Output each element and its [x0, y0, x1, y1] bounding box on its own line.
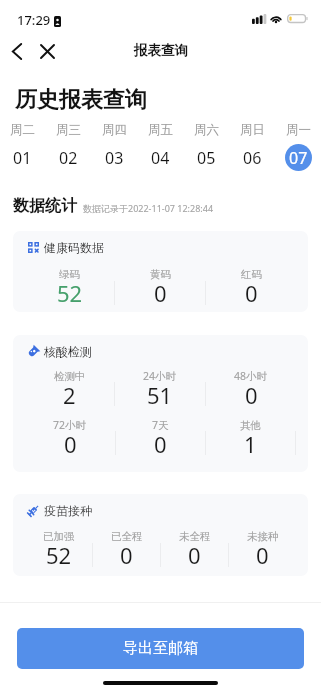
button[interactable]: 周四 — [91, 122, 137, 171]
staticText: 未全程 — [179, 530, 211, 543]
button[interactable]: 周六 — [183, 122, 229, 171]
staticText: 0 — [188, 540, 201, 570]
staticText: 黄码 — [150, 268, 171, 281]
staticText: 01 — [13, 147, 32, 169]
staticText: 06 — [243, 147, 262, 169]
staticText: 检测中 — [54, 370, 86, 383]
staticText: 0 — [64, 429, 77, 459]
button[interactable]: Close — [33, 37, 61, 65]
staticText: 72小时 — [53, 418, 87, 432]
staticText: 周三 — [56, 122, 81, 138]
staticText: 02 — [59, 147, 78, 169]
staticText: 周五 — [148, 122, 173, 138]
staticText: 03 — [105, 147, 124, 169]
staticText: 2 — [63, 380, 76, 410]
staticText: 1 — [244, 429, 257, 459]
staticText: 未接种 — [247, 530, 279, 543]
button[interactable]: Back — [3, 37, 31, 65]
staticText: 周四 — [102, 122, 127, 138]
staticText: 51 — [147, 380, 173, 410]
button[interactable]: 周三 — [45, 122, 91, 171]
staticText: 0 — [245, 278, 258, 308]
staticText: 健康码数据 — [44, 240, 104, 255]
staticText: 历史报表查询 — [15, 86, 147, 114]
staticText: 04 — [151, 147, 170, 169]
button[interactable]: 周五 — [137, 122, 183, 171]
button[interactable]: 周二 — [0, 122, 45, 171]
staticText: 52 — [46, 540, 72, 570]
staticText: 48小时 — [234, 369, 268, 383]
staticText: 疫苗接种 — [44, 503, 92, 518]
staticText: 已全程 — [111, 530, 143, 543]
staticText: 0 — [120, 540, 133, 570]
staticText: 05 — [197, 147, 216, 169]
staticText: 24小时 — [143, 369, 177, 383]
staticText: 周日 — [240, 122, 265, 138]
staticText: 0 — [256, 540, 269, 570]
staticText: 17:29 — [17, 11, 51, 29]
staticText: 报表查询 — [134, 42, 188, 59]
staticText: 绿码 — [59, 268, 80, 281]
staticText: 周一 — [286, 122, 311, 138]
staticText: 7天 — [152, 418, 169, 432]
staticText: 周二 — [10, 122, 35, 138]
button[interactable]: 周一 — [275, 122, 321, 171]
staticText: 导出至邮箱 — [123, 639, 198, 658]
staticText: 其他 — [240, 419, 261, 432]
button[interactable]: 导出至邮箱 — [17, 628, 304, 669]
staticText: 数据统计 — [13, 196, 77, 216]
staticText: 核酸检测 — [44, 344, 92, 359]
staticText: 52 — [57, 278, 83, 308]
staticText: 周六 — [194, 122, 219, 138]
staticText: 已加强 — [43, 530, 75, 543]
staticText: 07 — [289, 147, 308, 169]
staticText: 红码 — [241, 268, 262, 281]
button[interactable]: 周日 — [229, 122, 275, 171]
staticText: 0 — [245, 380, 258, 410]
staticText: 数据记录于2022-11-07 12:28:44 — [83, 202, 214, 214]
staticText: 0 — [154, 278, 167, 308]
staticText: 0 — [154, 429, 167, 459]
